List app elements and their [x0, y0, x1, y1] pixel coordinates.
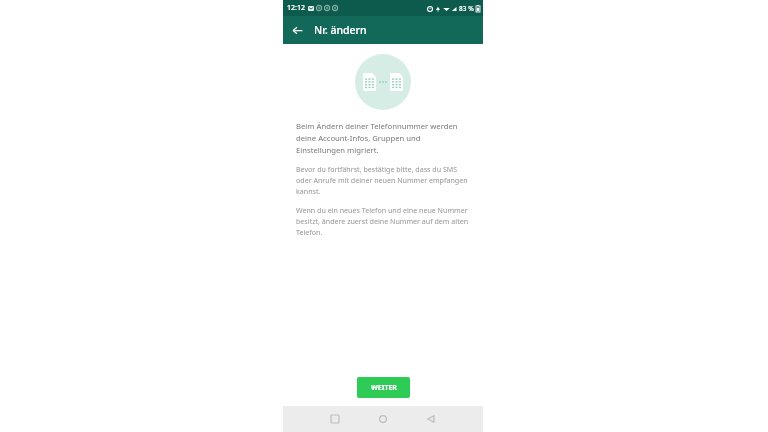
staticText: 83 %: [459, 4, 474, 13]
staticText: Wenn du ein neues Telefon und eine neue …: [296, 205, 470, 237]
staticText: WEITER: [371, 383, 397, 393]
staticText: Bevor du fortfährst, bestätige bitte, da…: [296, 164, 470, 196]
button[interactable]: Zurück: [287, 20, 307, 40]
button[interactable]: Startseite: [370, 406, 396, 432]
staticText: Beim Ändern deiner Telefonnummer werden …: [296, 121, 470, 155]
button[interactable]: Zurück: [418, 406, 444, 432]
staticText: Nr. ändern: [314, 23, 367, 37]
button[interactable]: WEITER: [357, 377, 410, 398]
button[interactable]: Letzte Apps: [322, 406, 348, 432]
staticText: 12:12: [287, 3, 305, 13]
